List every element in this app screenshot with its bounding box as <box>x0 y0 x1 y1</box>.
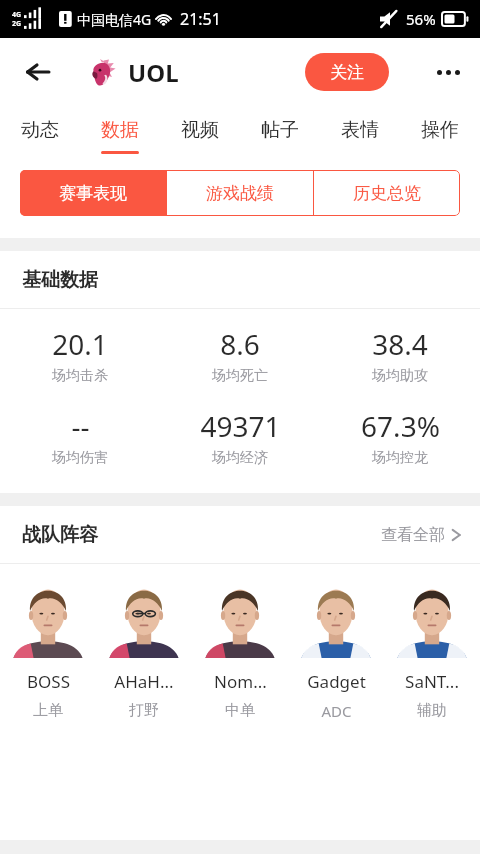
button[interactable]: 动态 <box>0 106 80 162</box>
staticText: 战队阵容 <box>22 523 98 547</box>
button[interactable]: 表情 <box>320 106 400 162</box>
staticText: 上单 <box>33 701 63 720</box>
staticText: Gadget <box>307 670 366 693</box>
staticText: 场均控龙 <box>372 449 428 467</box>
button[interactable]: 关注 <box>305 53 389 91</box>
staticText: 56% <box>406 9 436 29</box>
staticText: -- <box>71 407 90 445</box>
staticText: 8.6 <box>220 325 260 363</box>
button[interactable]: 查看全部 <box>381 525 462 545</box>
staticText: 4G 2G <box>12 10 22 28</box>
button[interactable]: 游戏战绩 <box>167 170 313 216</box>
button[interactable]: SaNT... <box>384 582 480 720</box>
staticText: ADC <box>321 701 352 721</box>
staticText: 视频 <box>181 118 219 142</box>
button[interactable]: Back <box>14 48 62 96</box>
button[interactable]: Gadget <box>288 582 384 721</box>
staticText: 打野 <box>129 701 159 720</box>
staticText: 中单 <box>225 701 255 720</box>
button[interactable]: AHaH... <box>96 582 192 720</box>
staticText: 基础数据 <box>22 268 98 292</box>
button[interactable]: 操作 <box>400 106 480 162</box>
button[interactable]: More options <box>424 48 472 96</box>
staticText: 表情 <box>341 118 379 142</box>
staticText: 场均经济 <box>212 449 268 467</box>
staticText: SaNT... <box>405 670 459 693</box>
staticText: 场均死亡 <box>212 367 268 385</box>
staticText: 查看全部 <box>381 525 445 545</box>
staticText: 场均助攻 <box>372 367 428 385</box>
staticText: 关注 <box>330 62 364 83</box>
staticText: 中国电信4G <box>77 10 152 29</box>
staticText: 49371 <box>200 407 281 445</box>
staticText: 场均伤害 <box>52 449 108 467</box>
button[interactable]: 赛事表现 <box>20 170 166 216</box>
staticText: 20.1 <box>52 325 108 363</box>
staticText: BOSS <box>27 670 70 693</box>
button[interactable]: 视频 <box>160 106 240 162</box>
button[interactable]: BOSS <box>0 582 96 720</box>
button[interactable]: 历史总览 <box>314 170 460 216</box>
button[interactable]: 帖子 <box>240 106 320 162</box>
staticText: 数据 <box>101 118 139 142</box>
staticText: 动态 <box>21 118 59 142</box>
staticText: 21:51 <box>180 8 221 30</box>
button[interactable]: Nom... <box>192 582 288 720</box>
staticText: 游戏战绩 <box>206 183 274 204</box>
staticText: AHaH... <box>114 670 174 693</box>
staticText: Nom... <box>214 670 267 693</box>
staticText: 辅助 <box>417 701 447 720</box>
staticText: 帖子 <box>261 118 299 142</box>
staticText: 赛事表现 <box>59 183 127 204</box>
staticText: 场均击杀 <box>52 367 108 385</box>
staticText: 67.3% <box>361 407 440 445</box>
staticText: 历史总览 <box>353 183 421 204</box>
staticText: 操作 <box>421 118 459 142</box>
staticText: 38.4 <box>372 325 428 363</box>
staticText: UOL <box>128 56 179 89</box>
button[interactable]: 数据 <box>80 106 160 162</box>
